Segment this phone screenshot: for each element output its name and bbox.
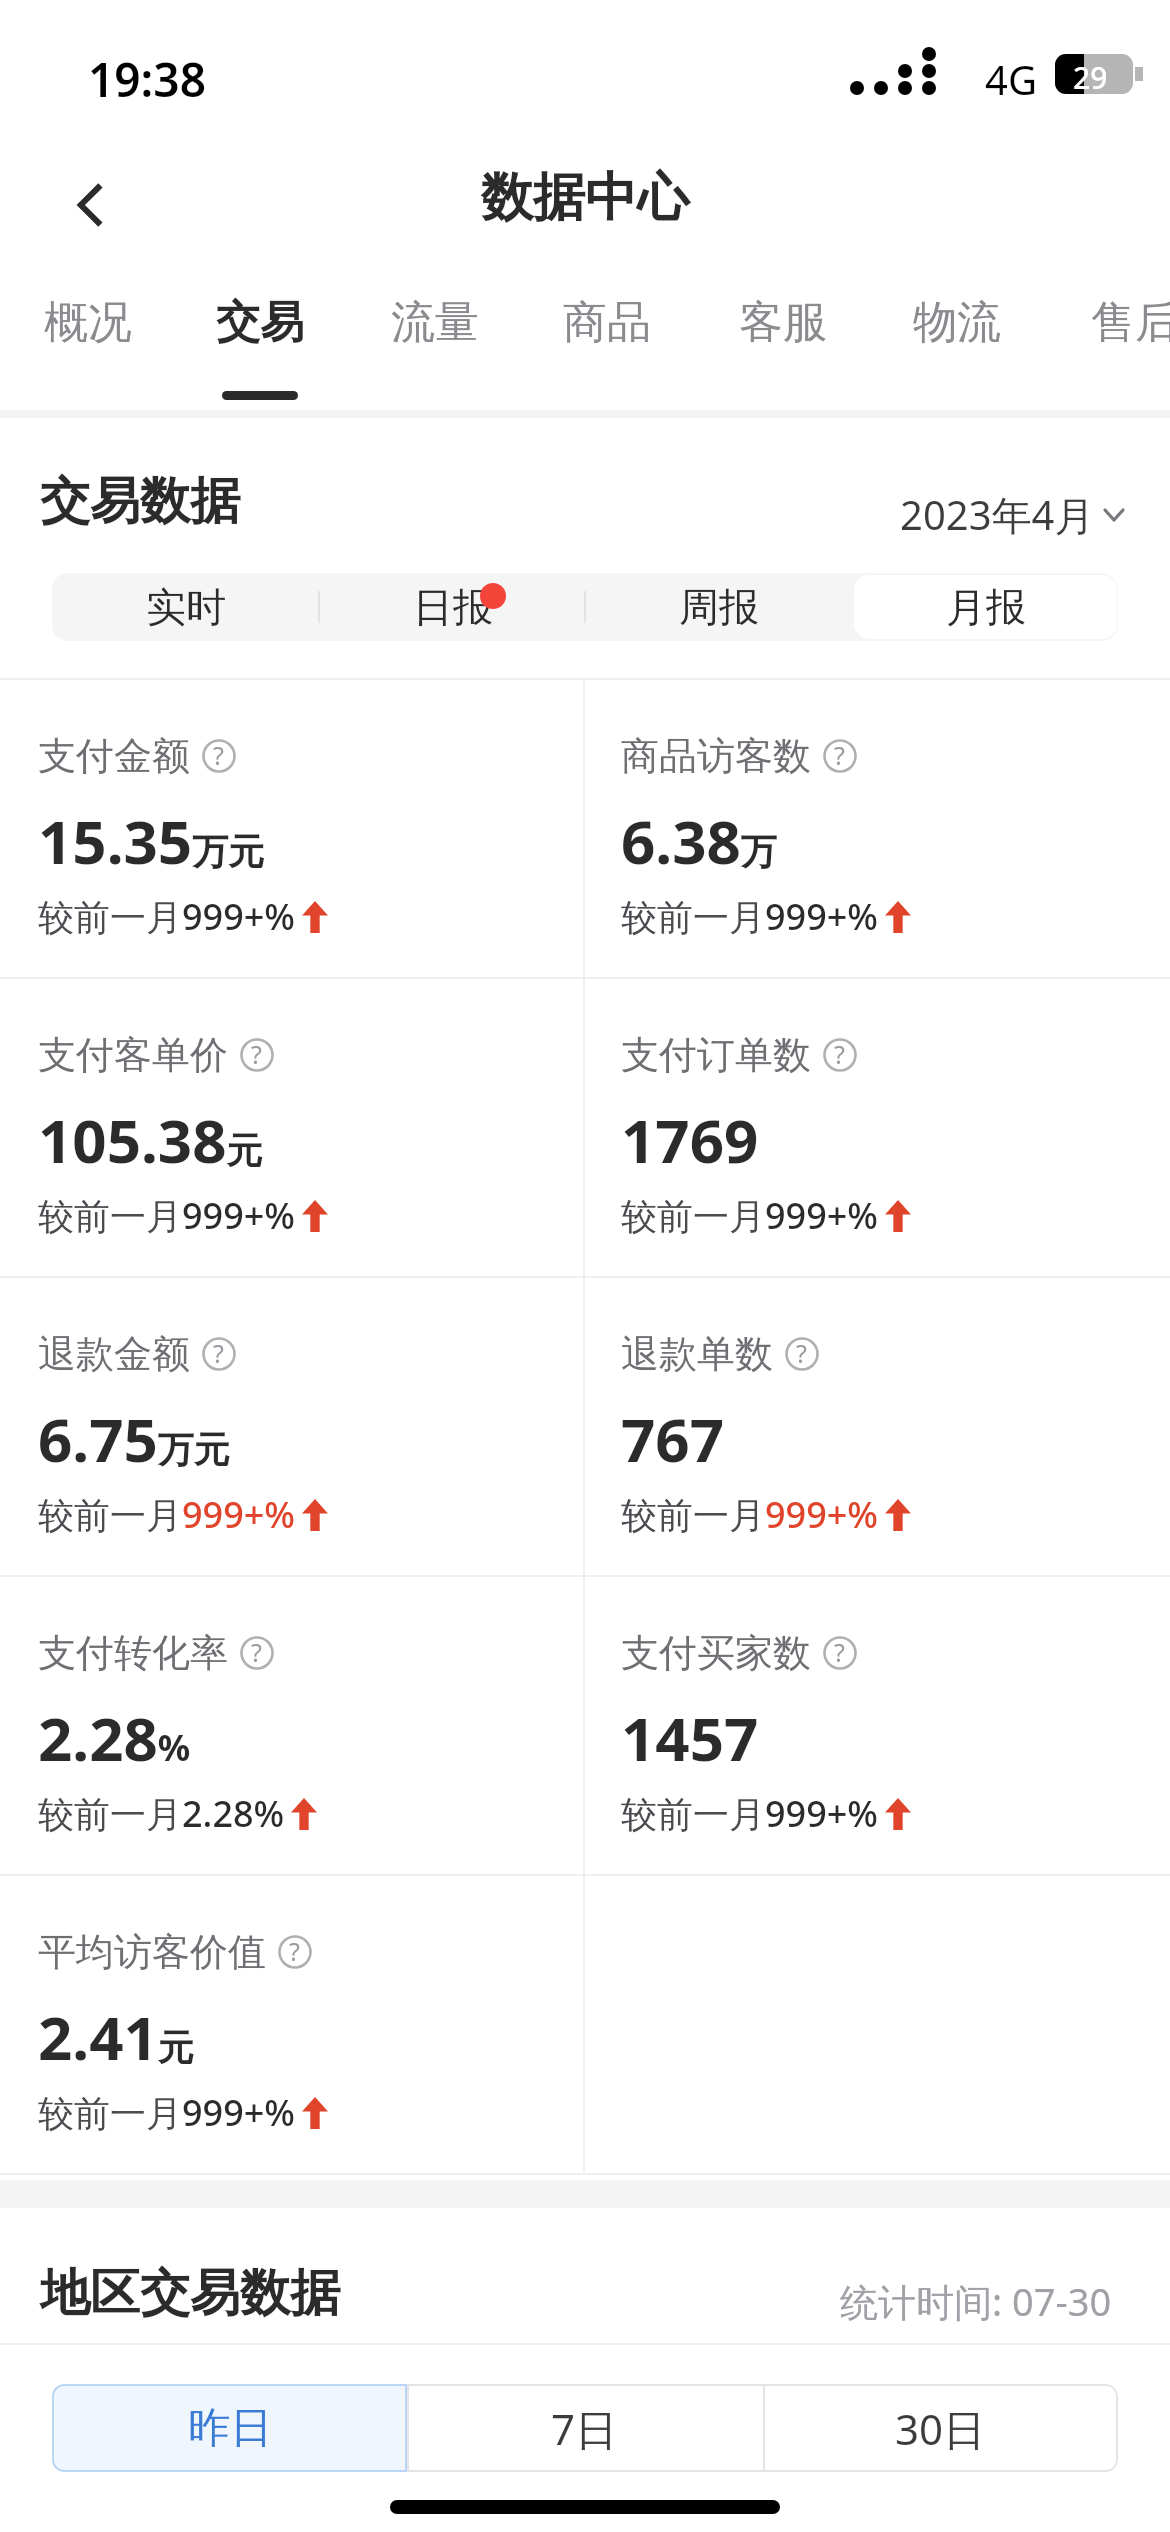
- staticText: 19:38: [88, 48, 206, 111]
- button[interactable]: 流量: [370, 295, 500, 407]
- staticText: 数据中心: [481, 165, 689, 231]
- button[interactable]: 7日: [407, 2384, 762, 2472]
- staticText: 昨日: [188, 2402, 272, 2455]
- staticText: 较前一月999+%: [38, 2088, 296, 2137]
- staticText: 较前一月2.28%: [38, 1789, 285, 1838]
- staticText: 地区交易数据: [40, 2262, 340, 2325]
- staticText: 支付金额: [38, 732, 190, 780]
- staticText: 商品: [563, 295, 651, 350]
- button[interactable]: 售后: [1070, 295, 1170, 407]
- button[interactable]: 退款单数: [583, 1278, 1170, 1575]
- button[interactable]: 商品: [542, 295, 672, 407]
- button[interactable]: 退款金额: [0, 1278, 583, 1575]
- button[interactable]: 支付转化率: [0, 1577, 583, 1874]
- staticText: 29: [1073, 57, 1108, 98]
- staticText: 支付订单数: [621, 1031, 811, 1079]
- button[interactable]: 交易: [195, 295, 325, 407]
- staticText: 交易数据: [40, 470, 240, 533]
- staticText: 支付客单价: [38, 1031, 228, 1079]
- staticText: 2.28%: [38, 1697, 191, 1779]
- staticText: ?: [213, 1336, 224, 1370]
- staticText: 6.38万: [621, 800, 777, 882]
- staticText: 30日: [895, 2400, 986, 2457]
- button[interactable]: 概况: [23, 295, 153, 407]
- staticText: 物流: [913, 295, 1001, 350]
- staticText: 较前一月999+%: [621, 892, 879, 941]
- button[interactable]: 支付金额: [0, 680, 583, 977]
- staticText: ?: [289, 1934, 300, 1968]
- staticText: ?: [251, 1037, 262, 1071]
- staticText: 退款单数: [621, 1330, 773, 1378]
- button[interactable]: 2023年4月: [900, 484, 1125, 544]
- button[interactable]: 物流: [892, 295, 1022, 407]
- button[interactable]: 月报: [852, 573, 1119, 641]
- staticText: 6.75万元: [38, 1398, 230, 1480]
- button[interactable]: 实时: [52, 573, 319, 641]
- staticText: 日报: [413, 582, 493, 632]
- button[interactable]: 支付订单数: [583, 979, 1170, 1276]
- staticText: 4G: [985, 52, 1037, 106]
- staticText: ?: [834, 1037, 845, 1071]
- staticText: 周报: [679, 582, 759, 632]
- button[interactable]: Back: [40, 155, 140, 255]
- button[interactable]: 客服: [718, 295, 848, 407]
- staticText: 支付转化率: [38, 1629, 228, 1677]
- staticText: 较前一月999+%: [38, 1191, 296, 1240]
- staticText: 退款金额: [38, 1330, 190, 1378]
- staticText: 2.41元: [38, 1996, 194, 2078]
- button[interactable]: 周报: [585, 573, 852, 641]
- staticText: ?: [834, 738, 845, 772]
- staticText: 1769: [621, 1099, 759, 1181]
- button[interactable]: 平均访客价值: [0, 1876, 583, 2173]
- staticText: ?: [796, 1336, 807, 1370]
- staticText: 交易: [216, 295, 304, 350]
- staticText: 售后: [1091, 295, 1170, 350]
- staticText: 统计时间: 07-30: [840, 2275, 1112, 2327]
- staticText: ?: [251, 1635, 262, 1669]
- button[interactable]: 日报: [319, 573, 586, 641]
- staticText: 7日: [551, 2400, 618, 2457]
- staticText: 商品访客数: [621, 732, 811, 780]
- staticText: 105.38元: [38, 1099, 263, 1181]
- staticText: 较前一月999+%: [621, 1191, 879, 1240]
- staticText: 较前一月999+%: [621, 1789, 879, 1838]
- staticText: 客服: [739, 295, 827, 350]
- staticText: ?: [834, 1635, 845, 1669]
- staticText: 2023年4月: [900, 487, 1095, 542]
- button[interactable]: 昨日: [52, 2384, 407, 2472]
- staticText: 较前一月999+%: [621, 1490, 879, 1539]
- button[interactable]: 支付买家数: [583, 1577, 1170, 1874]
- button[interactable]: 30日: [763, 2384, 1118, 2472]
- staticText: 实时: [146, 582, 226, 632]
- staticText: 较前一月999+%: [38, 1490, 296, 1539]
- staticText: ?: [213, 738, 224, 772]
- staticText: 767: [621, 1398, 724, 1480]
- staticText: 支付买家数: [621, 1629, 811, 1677]
- staticText: 较前一月999+%: [38, 892, 296, 941]
- staticText: 流量: [391, 295, 479, 350]
- staticText: 月报: [946, 582, 1026, 632]
- staticText: 平均访客价值: [38, 1928, 266, 1976]
- button[interactable]: 商品访客数: [583, 680, 1170, 977]
- staticText: 概况: [44, 295, 132, 350]
- staticText: 15.35万元: [38, 800, 265, 882]
- staticText: 1457: [621, 1697, 759, 1779]
- button[interactable]: 支付客单价: [0, 979, 583, 1276]
